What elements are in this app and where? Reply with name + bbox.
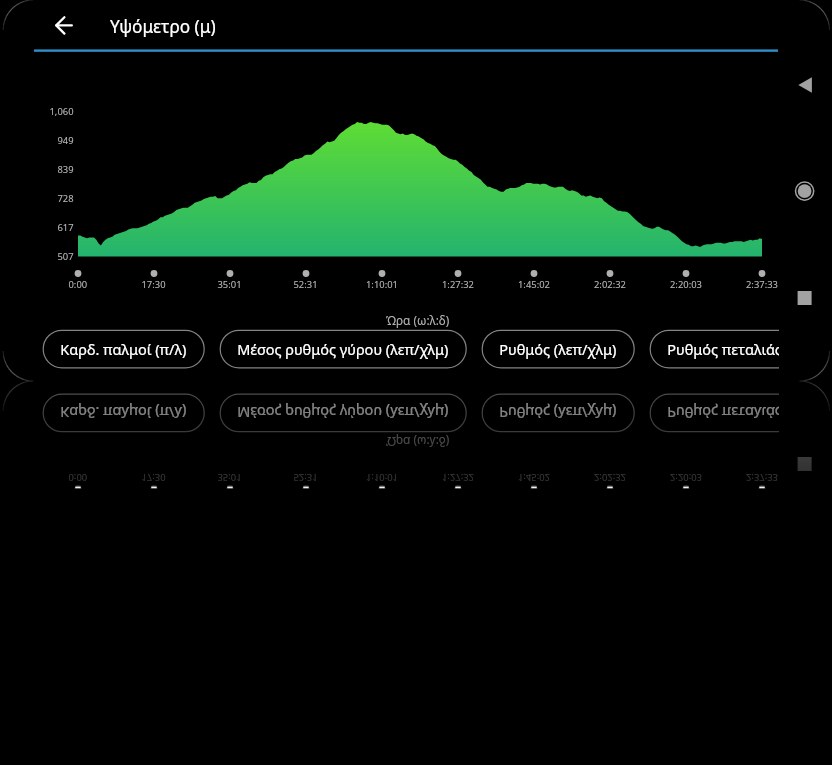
button[interactable]: Ρυθμός πεταλιάς [653,330,801,368]
button[interactable]: Ρυθμός (λεπ/χλμ) [483,330,637,368]
button[interactable]: Home [792,179,817,204]
button[interactable]: Καρδ. παλμοί (π/λ) [43,330,204,368]
button[interactable]: Υψόμετρο (μ) [100,7,230,44]
button[interactable]: Back [46,7,83,44]
button[interactable]: Back [793,72,818,97]
button[interactable]: Recent apps [793,286,817,310]
button[interactable]: Μέσος ρυθμός γύρου (λεπ/χλμ) [220,330,467,368]
